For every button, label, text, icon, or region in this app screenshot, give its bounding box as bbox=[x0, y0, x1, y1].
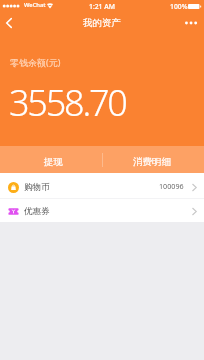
button[interactable]: 优惠券 bbox=[0, 199, 204, 222]
button[interactable]: Back bbox=[0, 12, 17, 34]
staticText: 零钱余额(元) bbox=[10, 56, 61, 68]
staticText: WeChat bbox=[24, 1, 46, 9]
button[interactable]: 消费明细 bbox=[102, 146, 204, 173]
staticText: 消费明细 bbox=[133, 156, 171, 168]
button[interactable]: 购物币 bbox=[0, 173, 204, 198]
staticText: 购物币 bbox=[24, 182, 50, 193]
staticText: 我的资产 bbox=[83, 17, 121, 29]
staticText: 优惠券 bbox=[24, 206, 50, 217]
button[interactable]: 提现 bbox=[0, 146, 102, 173]
staticText: 100% bbox=[170, 2, 188, 11]
staticText: 1:21 AM bbox=[89, 2, 115, 11]
button[interactable]: More options bbox=[178, 12, 204, 34]
staticText: 100096 bbox=[159, 181, 184, 191]
staticText: 3558.70 bbox=[9, 78, 126, 127]
staticText: 提现 bbox=[44, 156, 63, 168]
